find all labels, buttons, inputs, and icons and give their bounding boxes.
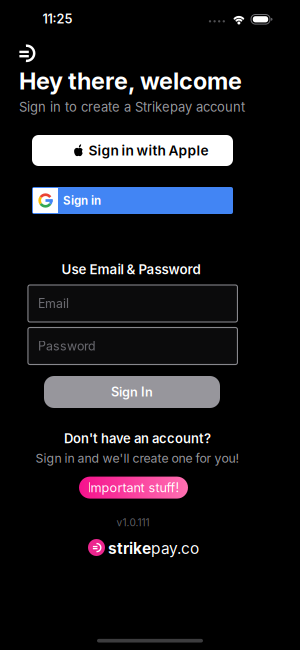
button[interactable]: Sign in with Apple [32, 135, 233, 166]
staticText: Use Email & Password [61, 261, 200, 277]
button[interactable]: Sign in [32, 187, 233, 214]
staticText: Important stuff! [87, 480, 179, 495]
staticText: Don't have an account? [64, 431, 211, 446]
button[interactable]: Password [28, 327, 237, 364]
button[interactable]: Sign In [44, 376, 220, 408]
button[interactable]: Email [28, 285, 237, 322]
staticText: strike [108, 539, 151, 558]
staticText: Sign in to create a Strikepay account [19, 99, 245, 115]
staticText: Password [38, 338, 96, 353]
staticText: Email [38, 296, 69, 311]
button[interactable]: Important stuff! [79, 477, 188, 499]
staticText: Hey there, welcome [19, 67, 242, 95]
staticText: Sign In [111, 384, 153, 400]
staticText: Sign in with Apple [88, 142, 208, 159]
staticText: Sign in [63, 194, 101, 207]
staticText: v1.0.111 [116, 516, 149, 529]
staticText: Sign in and we'll create one for you! [35, 451, 239, 466]
staticText: pay.co [151, 539, 199, 558]
staticText: 11:25 [42, 11, 72, 26]
